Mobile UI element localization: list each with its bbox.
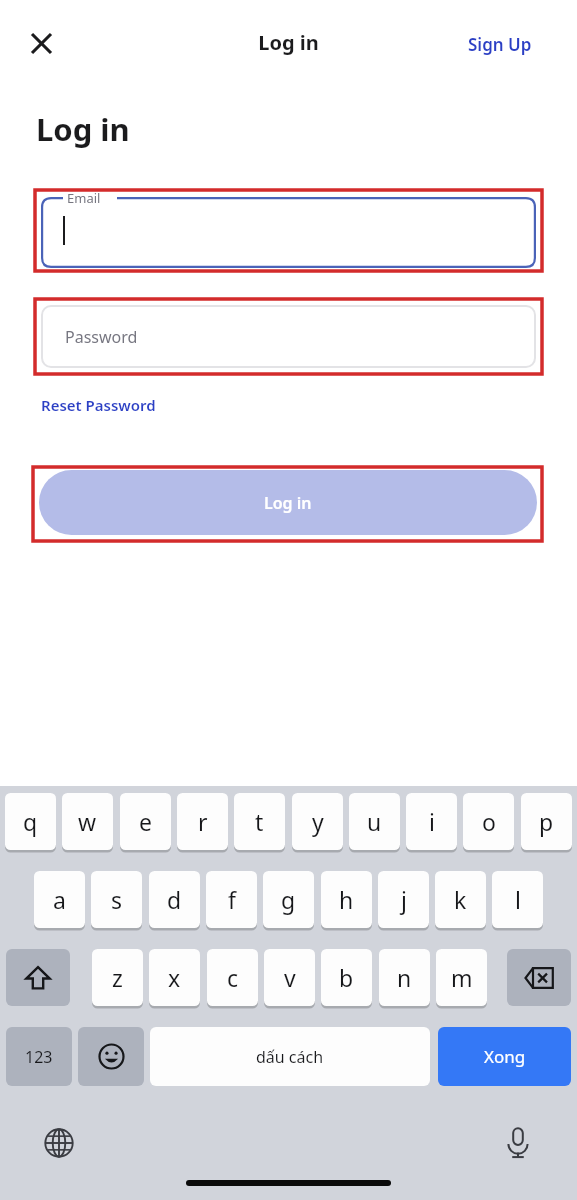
staticText: g <box>281 884 296 915</box>
staticText: v <box>284 962 296 993</box>
button[interactable]: Reset Password <box>41 391 156 418</box>
button[interactable]: w <box>62 793 113 850</box>
button[interactable]: Password <box>41 305 536 368</box>
staticText: j <box>401 884 407 915</box>
staticText: s <box>111 884 123 915</box>
button[interactable]: Backspace <box>507 949 571 1006</box>
staticText: b <box>339 962 354 993</box>
staticText: k <box>454 884 467 915</box>
staticText: l <box>515 884 521 915</box>
staticText: w <box>78 806 97 837</box>
staticText: e <box>139 806 152 837</box>
button[interactable]: y <box>292 793 343 850</box>
button[interactable]: x <box>149 949 200 1006</box>
button[interactable]: o <box>463 793 514 850</box>
button[interactable]: l <box>492 871 543 928</box>
button[interactable]: a <box>34 871 85 928</box>
staticText: u <box>367 806 382 837</box>
staticText: Log in <box>258 29 319 56</box>
staticText: y <box>312 806 324 837</box>
button[interactable]: t <box>234 793 285 850</box>
staticText: q <box>23 806 38 837</box>
staticText: m <box>451 962 473 993</box>
button[interactable]: f <box>206 871 257 928</box>
button[interactable]: q <box>5 793 56 850</box>
button[interactable]: Xong <box>438 1027 571 1086</box>
staticText: p <box>539 806 554 837</box>
button[interactable]: j <box>378 871 429 928</box>
button[interactable]: z <box>92 949 143 1006</box>
staticText: i <box>429 806 435 837</box>
staticText: a <box>53 884 66 915</box>
staticText: t <box>255 806 264 837</box>
button[interactable]: s <box>91 871 142 928</box>
staticText: c <box>227 962 239 993</box>
staticText: x <box>168 962 181 993</box>
button[interactable] <box>6 949 70 1006</box>
button[interactable]: dấu cách <box>150 1027 430 1086</box>
button[interactable]: m <box>436 949 487 1006</box>
staticText: Log in <box>36 108 130 150</box>
button[interactable]: Numbers <box>6 1027 72 1086</box>
staticText: 123 <box>25 1046 53 1068</box>
button[interactable]: h <box>321 871 372 928</box>
button[interactable]: Voice input <box>497 1122 539 1164</box>
staticText: z <box>112 962 123 993</box>
button[interactable]: Change keyboard language <box>38 1122 80 1164</box>
staticText: Sign Up <box>468 33 532 56</box>
button[interactable]: g <box>263 871 314 928</box>
button[interactable]: d <box>149 871 200 928</box>
button[interactable]: Email <box>41 197 536 268</box>
staticText: n <box>397 962 412 993</box>
button[interactable]: c <box>207 949 258 1006</box>
button[interactable]: u <box>349 793 400 850</box>
staticText: f <box>228 884 236 915</box>
button[interactable]: k <box>435 871 486 928</box>
staticText: Xong <box>484 1045 526 1068</box>
button[interactable]: i <box>406 793 457 850</box>
button[interactable]: p <box>521 793 572 850</box>
button[interactable]: Close <box>24 26 59 61</box>
staticText: o <box>482 806 496 837</box>
staticText: Password <box>65 326 138 348</box>
button[interactable]: n <box>379 949 430 1006</box>
staticText: Reset Password <box>41 395 156 415</box>
button[interactable]: Log in <box>39 470 537 535</box>
staticText: Email <box>67 189 101 207</box>
button[interactable]: e <box>120 793 171 850</box>
button[interactable]: Sign Up <box>468 25 560 63</box>
button[interactable]: Emoji <box>78 1027 144 1086</box>
button[interactable]: b <box>321 949 372 1006</box>
button[interactable]: v <box>264 949 315 1006</box>
staticText: dấu cách <box>256 1046 324 1068</box>
staticText: h <box>339 884 354 915</box>
button[interactable]: r <box>177 793 228 850</box>
staticText: r <box>198 806 208 837</box>
staticText: Log in <box>264 492 312 514</box>
staticText: d <box>167 884 182 915</box>
